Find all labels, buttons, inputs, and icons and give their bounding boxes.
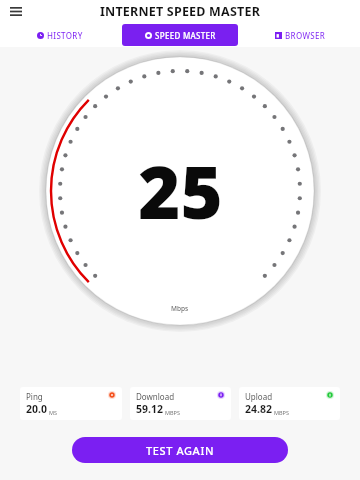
staticText: INTERNET SPEED MASTER [100, 3, 261, 20]
button[interactable]: BROWSER [271, 30, 330, 41]
staticText: MS [49, 409, 58, 416]
staticText: 20.0 [26, 402, 47, 416]
button[interactable]: Upload [239, 387, 340, 420]
button[interactable]: HISTORY [33, 30, 87, 41]
staticText: Download [136, 391, 175, 402]
staticText: 24.82 [245, 402, 272, 416]
button[interactable]: Ping [20, 387, 122, 420]
staticText: Upload [245, 391, 273, 402]
button[interactable]: Menu [4, 0, 28, 23]
staticText: TEST AGAIN [146, 443, 215, 458]
staticText: 25 [138, 142, 223, 240]
staticText: Ping [26, 391, 43, 402]
staticText: HISTORY [47, 30, 83, 41]
button[interactable]: Download [130, 387, 231, 420]
staticText: MBPS [274, 409, 289, 416]
button[interactable]: TEST AGAIN [72, 437, 288, 463]
staticText: MBPS [165, 409, 180, 416]
staticText: 59.12 [136, 402, 163, 416]
staticText: BROWSER [285, 30, 326, 41]
staticText: SPEED MASTER [155, 30, 216, 41]
button[interactable]: SPEED MASTER [122, 24, 238, 46]
staticText: Mbps [171, 304, 189, 313]
